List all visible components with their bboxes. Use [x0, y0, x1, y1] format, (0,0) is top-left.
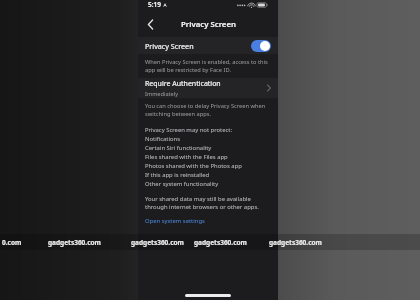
staticText: If this app is reinstalled: [145, 171, 210, 179]
staticText: 0.com: [2, 238, 22, 247]
staticText: gadgets360.com: [269, 238, 322, 247]
staticText: Open system settings: [145, 217, 205, 225]
staticText: Privacy Screen: [181, 19, 236, 30]
staticText: Other system functionality: [145, 180, 219, 188]
button[interactable]: Require Authentication: [138, 78, 278, 98]
staticText: Notifications: [145, 135, 181, 143]
staticText: Privacy Screen may not protect:: [145, 126, 233, 134]
staticText: gadgets360.com: [194, 238, 247, 247]
staticText: When Privacy Screen is enabled, access t…: [145, 58, 270, 74]
button[interactable]: Open system settings: [145, 217, 205, 225]
staticText: Immediately: [145, 90, 179, 98]
button[interactable]: Privacy Screen: [138, 37, 278, 54]
button[interactable]: Privacy Screen toggle, on: [251, 40, 271, 52]
staticText: Require Authentication: [145, 79, 221, 89]
staticText: Photos shared with the Photos app: [145, 162, 242, 170]
staticText: gadgets360.com: [48, 238, 101, 247]
staticText: Files shared with the Files app: [145, 153, 228, 161]
staticText: Your shared data may still be available …: [145, 195, 270, 211]
staticText: gadgets360.com: [131, 238, 184, 247]
staticText: Certain Siri functionality: [145, 144, 212, 152]
button[interactable]: Back: [143, 16, 157, 32]
staticText: Privacy Screen: [145, 41, 194, 51]
staticText: 5:19: [148, 0, 161, 9]
staticText: You can choose to delay Privacy Screen w…: [145, 102, 270, 118]
